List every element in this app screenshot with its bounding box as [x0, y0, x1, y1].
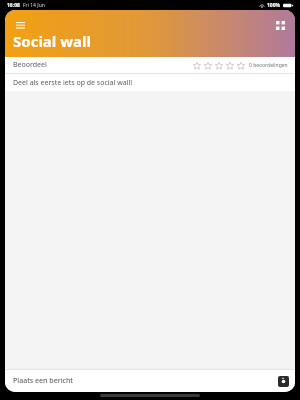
staticText: 100%	[267, 2, 281, 9]
staticText: Deel als eerste iets op de social wall!	[13, 78, 133, 88]
button[interactable]: Rate star	[202, 60, 213, 71]
staticText: Plaats een bericht	[13, 376, 74, 386]
staticText: Beoordeel	[13, 60, 47, 70]
button[interactable]: Rate star	[235, 60, 246, 71]
staticText: 16:08	[7, 2, 20, 9]
staticText: 0 beoordelingen	[249, 62, 288, 69]
staticText: Fri 14 Jun	[23, 2, 45, 9]
staticText: Social wall	[13, 31, 91, 51]
button[interactable]: Add photo	[278, 376, 289, 387]
button[interactable]: Rate star	[191, 60, 202, 71]
button[interactable]: Rate star	[213, 60, 224, 71]
button[interactable]: Scan code	[272, 17, 288, 33]
button[interactable]: Rate star	[224, 60, 235, 71]
button[interactable]: Menu	[12, 17, 28, 33]
button[interactable]: Plaats een bericht	[5, 370, 295, 392]
